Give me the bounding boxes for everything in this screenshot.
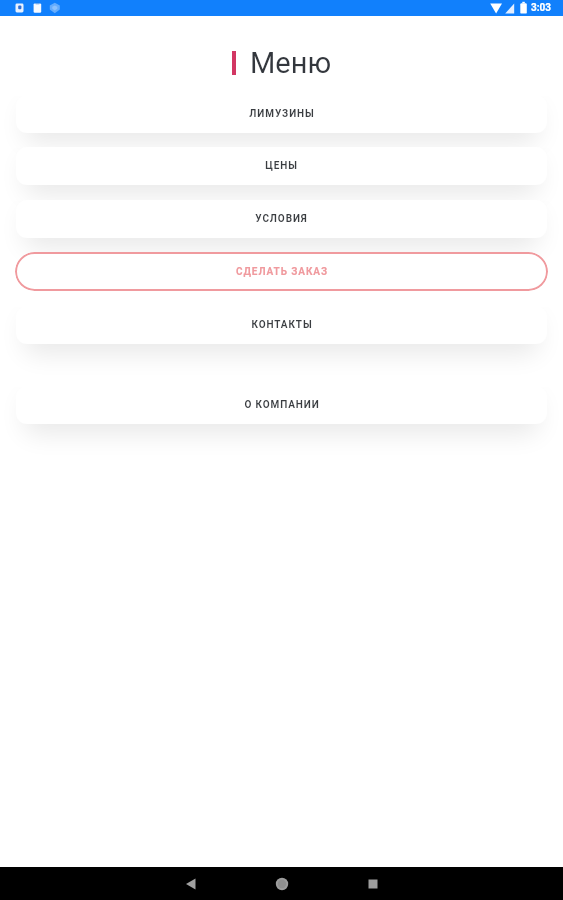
button[interactable]: УСЛОВИЯ [16, 200, 547, 238]
button[interactable]: ЦЕНЫ [16, 147, 547, 185]
staticText: ЦЕНЫ [265, 160, 298, 172]
staticText: ЛИМУЗИНЫ [249, 108, 315, 120]
button[interactable]: О КОМПАНИИ [16, 386, 547, 424]
button[interactable]: Recent apps [344, 867, 401, 900]
button[interactable]: Home [253, 867, 310, 900]
staticText: УСЛОВИЯ [255, 213, 308, 225]
button[interactable]: ЛИМУЗИНЫ [16, 95, 547, 133]
button[interactable]: СДЕЛАТЬ ЗАКАЗ [15, 252, 548, 291]
button[interactable]: КОНТАКТЫ [16, 306, 547, 344]
staticText: СДЕЛАТЬ ЗАКАЗ [236, 266, 328, 278]
staticText: О КОМПАНИИ [244, 399, 320, 411]
staticText: Меню [250, 46, 332, 80]
staticText: КОНТАКТЫ [251, 319, 313, 331]
staticText: 3:03 [531, 2, 552, 14]
button[interactable]: Back [162, 867, 219, 900]
